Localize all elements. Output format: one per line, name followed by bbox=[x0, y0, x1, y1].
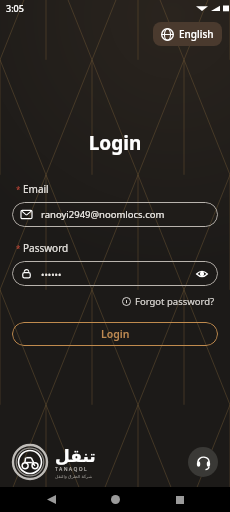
button[interactable]: Support bbox=[188, 447, 218, 477]
staticText: ranoyi2949@noomlocs.com bbox=[41, 208, 165, 221]
staticText: Login bbox=[12, 130, 218, 156]
button[interactable]: Show password bbox=[195, 267, 209, 281]
staticText: Login bbox=[101, 327, 130, 341]
staticText: Password bbox=[23, 241, 69, 255]
staticText: شركة الطرق والنقل bbox=[55, 473, 93, 479]
button[interactable]: Recents bbox=[166, 487, 194, 512]
button[interactable]: ranoyi2949@noomlocs.com bbox=[12, 202, 218, 227]
staticText: T A N A Q O L bbox=[55, 466, 87, 473]
staticText: * bbox=[16, 184, 21, 195]
staticText: 3:05 bbox=[6, 2, 24, 14]
staticText: English bbox=[179, 27, 214, 41]
staticText: Forgot password? bbox=[135, 295, 215, 308]
button[interactable]: Back bbox=[37, 487, 65, 512]
button[interactable]: Forgot password? bbox=[119, 293, 218, 310]
button[interactable]: Home bbox=[101, 487, 129, 512]
button[interactable]: English bbox=[153, 22, 222, 46]
staticText: Email bbox=[23, 182, 49, 196]
staticText: * bbox=[16, 243, 21, 254]
staticText: تنقل bbox=[55, 446, 96, 466]
button[interactable]: Login bbox=[12, 322, 218, 346]
staticText: •••••• bbox=[41, 268, 62, 280]
button[interactable]: •••••• bbox=[12, 261, 218, 286]
